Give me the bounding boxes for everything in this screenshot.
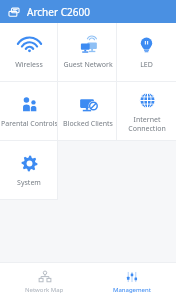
button[interactable]: Network Map bbox=[0, 263, 88, 300]
button[interactable]: System bbox=[0, 141, 58, 200]
button[interactable]: Internet Connection bbox=[117, 82, 176, 141]
staticText: Archer C2600 bbox=[27, 5, 90, 19]
staticText: Network Map bbox=[25, 286, 64, 294]
staticText: Management bbox=[113, 286, 151, 294]
staticText: Guest Network bbox=[63, 60, 113, 70]
staticText: Wireless bbox=[15, 60, 43, 70]
button[interactable]: Wireless bbox=[0, 23, 58, 82]
button[interactable]: Blocked Clients bbox=[58, 82, 117, 141]
staticText: Blocked Clients bbox=[63, 119, 113, 129]
button[interactable]: LED bbox=[117, 23, 176, 82]
button[interactable]: Management bbox=[88, 263, 176, 300]
staticText: Parental Controls bbox=[1, 119, 58, 129]
staticText: Internet Connection bbox=[128, 115, 166, 133]
button[interactable]: Guest Network bbox=[58, 23, 117, 82]
staticText: LED bbox=[140, 60, 153, 70]
staticText: System bbox=[17, 178, 41, 188]
button[interactable]: Router device bbox=[6, 4, 22, 20]
button[interactable]: Parental Controls bbox=[0, 82, 58, 141]
